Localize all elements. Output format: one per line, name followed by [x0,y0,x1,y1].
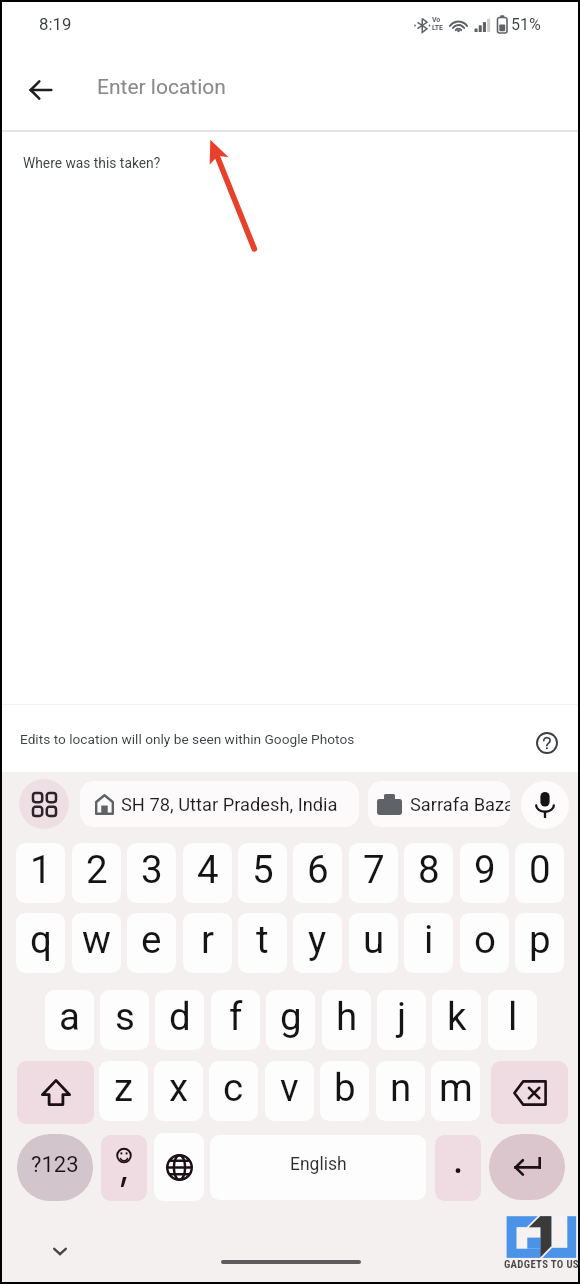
button[interactable]: m [431,1061,480,1121]
staticText: s [115,994,135,1039]
staticText: 6 [307,847,329,892]
staticText: w [82,917,111,962]
staticText: v [280,1065,299,1110]
button[interactable]: w [72,913,121,973]
button[interactable]: 0 [515,843,564,903]
staticText: English [290,1154,347,1175]
staticText: m [439,1065,473,1110]
button[interactable]: k [432,990,481,1050]
button[interactable]: n [376,1061,425,1121]
button[interactable]: j [377,990,426,1050]
button[interactable]: Hide keyboard [37,1228,83,1274]
button[interactable]: 9 [460,843,509,903]
button[interactable] [435,1135,481,1201]
staticText: g [280,994,302,1039]
button[interactable]: Switch language [154,1133,204,1201]
button[interactable]: Help [523,719,571,767]
staticText: f [229,994,243,1039]
button[interactable]: 1 [16,843,65,903]
button[interactable]: SH 78, Uttar Pradesh, India [80,781,359,827]
button[interactable]: x [154,1061,203,1121]
staticText: Where was this taken? [23,155,161,171]
staticText: i [424,917,434,962]
staticText: k [447,994,467,1039]
staticText: d [169,994,191,1039]
staticText: GADGETS TO USE [504,1258,580,1271]
button[interactable]: r [183,913,232,973]
button[interactable]: g [266,990,315,1050]
button[interactable]: d [155,990,204,1050]
button[interactable]: Clipboard [19,779,69,829]
button[interactable]: e [127,913,176,973]
button[interactable]: y [293,913,342,973]
button[interactable]: o [460,913,509,973]
staticText: 7 [363,847,385,892]
staticText: 0 [529,847,551,892]
button[interactable]: 8 [404,843,453,903]
button[interactable]: s [100,990,149,1050]
staticText: ?123 [31,1152,79,1178]
button[interactable]: f [211,990,260,1050]
button[interactable]: a [45,990,94,1050]
button[interactable]: i [404,913,453,973]
staticText: 3 [141,847,163,892]
staticText: 9 [474,847,496,892]
staticText: t [256,917,269,962]
staticText: u [363,917,385,962]
button[interactable]: Backspace [491,1061,568,1124]
staticText: Vo [432,16,440,24]
staticText: e [141,917,162,962]
button[interactable]: Sarrafa Bazar [368,781,510,827]
staticText: 5 [252,847,274,892]
button[interactable]: Back [17,66,65,114]
button[interactable]: English [210,1135,426,1200]
staticText: q [30,917,52,962]
staticText: Edits to location will only be seen with… [20,731,355,747]
staticText: j [397,994,407,1039]
staticText: b [334,1065,356,1110]
staticText: h [336,994,358,1039]
staticText: 51% [511,15,541,34]
staticText: LTE [432,24,443,32]
staticText: z [114,1065,134,1110]
staticText: Enter location [97,75,226,100]
staticText: SH 78, Uttar Pradesh, India [121,794,338,815]
button[interactable]: 4 [183,843,232,903]
staticText: p [529,917,551,962]
staticText: n [390,1065,412,1110]
staticText: 4 [197,847,219,892]
staticText: o [474,917,496,962]
button[interactable]: t [238,913,287,973]
staticText: a [59,994,80,1039]
button[interactable]: v [265,1061,314,1121]
staticText: c [223,1065,244,1110]
button[interactable]: u [349,913,398,973]
button[interactable]: c [209,1061,258,1121]
staticText: Sarrafa Bazar [410,794,510,815]
button[interactable]: Enter [489,1134,565,1200]
staticText: 8:19 [39,14,72,34]
staticText: 2 [86,847,108,892]
button[interactable]: Shift [17,1061,94,1124]
button[interactable]: Emoji [101,1135,147,1201]
button[interactable]: Voice input [521,781,569,829]
staticText: 1 [30,847,52,892]
staticText: x [169,1065,189,1110]
staticText: r [201,917,215,962]
button[interactable]: ?123 [17,1134,93,1201]
button[interactable]: 7 [349,843,398,903]
staticText: 8 [418,847,440,892]
button[interactable]: 5 [238,843,287,903]
button[interactable]: 3 [127,843,176,903]
staticText: l [508,994,518,1039]
button[interactable]: 2 [72,843,121,903]
button[interactable]: b [320,1061,369,1121]
button[interactable]: z [99,1061,148,1121]
staticText: y [308,917,327,962]
button[interactable]: q [16,913,65,973]
button[interactable]: 6 [293,843,342,903]
button[interactable]: p [515,913,564,973]
button[interactable]: h [322,990,371,1050]
button[interactable]: l [488,990,537,1050]
